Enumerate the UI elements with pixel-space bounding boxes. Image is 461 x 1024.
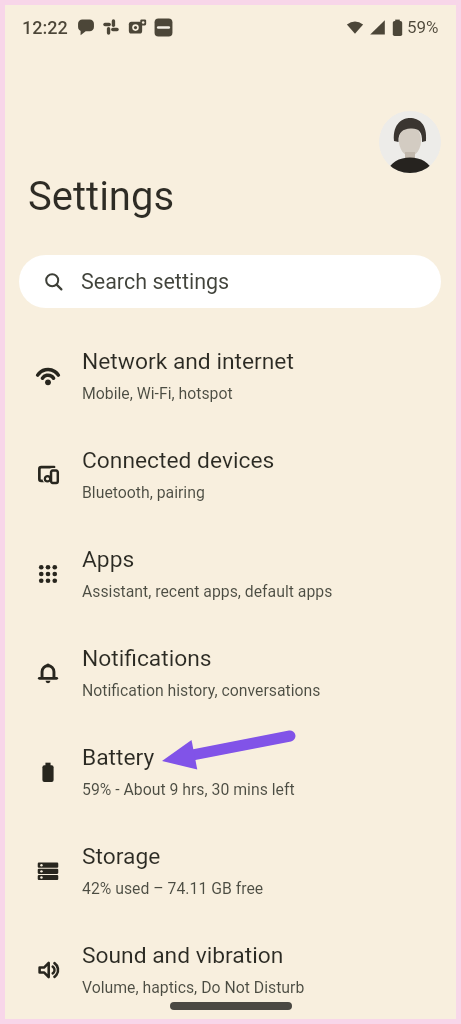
button[interactable]: Notifications bbox=[5, 623, 456, 722]
staticText: Network and internet bbox=[82, 348, 294, 375]
staticText: 59% - About 9 hrs, 30 mins left bbox=[82, 780, 295, 799]
staticText: Notifications bbox=[82, 645, 212, 672]
staticText: 42% used – 74.11 GB free bbox=[82, 879, 264, 898]
staticText: Connected devices bbox=[82, 447, 275, 474]
staticText: Notification history, conversations bbox=[82, 681, 321, 700]
staticText: Sound and vibration bbox=[82, 942, 284, 969]
button[interactable]: Battery bbox=[5, 722, 456, 821]
staticText: 59% bbox=[407, 17, 439, 37]
button[interactable]: Search settings bbox=[19, 255, 441, 308]
staticText: Apps bbox=[82, 546, 135, 573]
button[interactable] bbox=[379, 111, 441, 173]
staticText: Search settings bbox=[81, 269, 230, 294]
staticText: Storage bbox=[82, 843, 161, 870]
staticText: Battery bbox=[82, 744, 155, 771]
staticText: Settings bbox=[28, 173, 175, 220]
staticText: 12:22 bbox=[22, 17, 68, 38]
button[interactable]: Connected devices bbox=[5, 425, 456, 524]
staticText: Bluetooth, pairing bbox=[82, 483, 205, 502]
button[interactable]: Sound and vibration bbox=[5, 920, 456, 1019]
button[interactable]: Apps bbox=[5, 524, 456, 623]
staticText: Assistant, recent apps, default apps bbox=[82, 582, 333, 601]
staticText: Mobile, Wi-Fi, hotspot bbox=[82, 384, 233, 403]
button[interactable]: Network and internet bbox=[5, 326, 456, 425]
staticText: Volume, haptics, Do Not Disturb bbox=[82, 978, 305, 997]
button[interactable]: Storage bbox=[5, 821, 456, 920]
